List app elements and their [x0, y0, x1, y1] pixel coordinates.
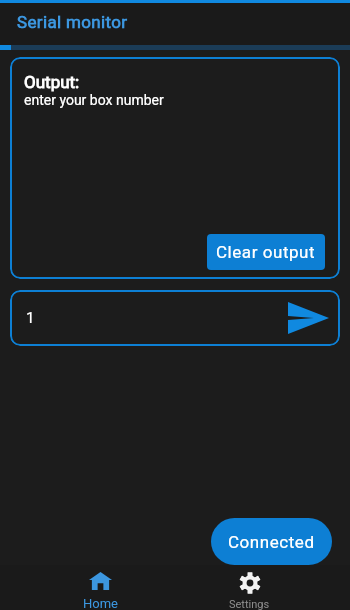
staticText: 1: [26, 309, 35, 327]
button[interactable]: Clear output: [207, 234, 325, 270]
staticText: Output:: [24, 72, 80, 92]
button[interactable]: Home: [26, 565, 175, 610]
button[interactable]: Connected: [211, 518, 332, 565]
staticText: Home: [83, 596, 118, 610]
button[interactable]: Send: [285, 295, 331, 341]
staticText: Serial monitor: [17, 12, 128, 32]
staticText: enter your box number: [24, 92, 164, 108]
button[interactable]: Settings: [175, 565, 324, 610]
staticText: Settings: [229, 598, 270, 610]
staticText: Connected: [228, 532, 315, 552]
staticText: Clear output: [216, 242, 316, 262]
